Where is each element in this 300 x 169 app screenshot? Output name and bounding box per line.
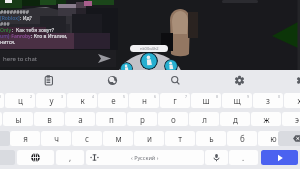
staticText: Fanroby xyxy=(10,33,31,39)
button[interactable]: Clipboard xyxy=(37,70,59,91)
staticText: щ xyxy=(233,95,241,106)
button[interactable]: More xyxy=(290,70,300,91)
staticText: 8 xyxy=(216,94,219,99)
button[interactable]: ь xyxy=(196,131,226,146)
button[interactable]: ц xyxy=(5,93,35,108)
staticText: here to chat xyxy=(0,55,37,63)
button[interactable]: Translate xyxy=(101,70,123,91)
staticText: 1 xyxy=(0,94,2,99)
button[interactable]: н xyxy=(129,93,159,108)
button[interactable]: Emote xyxy=(120,62,133,75)
button[interactable]: с xyxy=(72,131,102,146)
button[interactable]: Space xyxy=(86,150,204,165)
staticText: я xyxy=(23,133,28,144)
button[interactable]: , xyxy=(56,150,84,165)
staticText: и xyxy=(147,133,152,144)
staticText: л xyxy=(202,114,207,125)
staticText: ю xyxy=(270,133,277,144)
button[interactable]: . xyxy=(229,150,258,165)
staticText: . xyxy=(242,152,245,163)
staticText: um] xyxy=(0,33,10,39)
button[interactable]: о xyxy=(158,112,188,126)
staticText: з xyxy=(266,95,270,106)
staticText: нится. xyxy=(0,39,16,45)
button[interactable]: ю xyxy=(258,131,288,146)
button[interactable]: ж xyxy=(251,112,281,126)
button[interactable]: here to chat xyxy=(0,50,116,67)
staticText: 5 xyxy=(123,94,126,99)
staticText: 6 xyxy=(154,94,157,99)
button[interactable]: Emote xyxy=(164,59,178,73)
staticText: э xyxy=(295,114,299,125)
staticText: 7 xyxy=(185,94,188,99)
staticText: ш xyxy=(202,95,210,106)
button[interactable]: Backspace xyxy=(278,131,300,146)
staticText: nk00o4h2 xyxy=(140,46,159,51)
staticText: 4 xyxy=(92,94,95,99)
staticText: ######### xyxy=(0,9,30,15)
staticText: р xyxy=(140,114,145,125)
staticText: х xyxy=(297,95,300,106)
button[interactable]: ы xyxy=(3,112,33,126)
button[interactable]: з xyxy=(253,93,283,108)
button[interactable]: р xyxy=(127,112,157,126)
button[interactable]: п xyxy=(96,112,126,126)
button[interactable]: я xyxy=(10,131,40,146)
staticText: о xyxy=(171,114,176,125)
staticText: 0 xyxy=(278,94,281,99)
button[interactable]: Send xyxy=(261,150,298,165)
staticText: 2 xyxy=(30,94,33,99)
button[interactable]: Search xyxy=(164,70,186,91)
button[interactable]: б xyxy=(227,131,257,146)
staticText: : Как тебя зовут? xyxy=(12,27,54,33)
staticText: г xyxy=(173,95,177,106)
staticText: ь xyxy=(209,133,214,144)
button[interactable]: у xyxy=(36,93,66,108)
staticText: 3 xyxy=(61,94,64,99)
staticText: в xyxy=(47,114,52,125)
button[interactable]: ч xyxy=(41,131,71,146)
staticText: : Кто в Италии, xyxy=(31,33,68,39)
button[interactable]: а xyxy=(65,112,95,126)
button[interactable]: Emote xyxy=(140,52,158,70)
staticText: ‹ Русский › xyxy=(131,154,159,161)
button[interactable]: щ xyxy=(222,93,252,108)
button[interactable]: Settings xyxy=(228,70,250,91)
button[interactable]: и xyxy=(134,131,164,146)
staticText: 9 xyxy=(247,94,250,99)
button[interactable]: Voice input xyxy=(205,150,228,165)
button[interactable]: й xyxy=(0,93,4,108)
staticText: п xyxy=(109,114,114,125)
button[interactable]: т xyxy=(165,131,195,146)
button[interactable]: л xyxy=(189,112,219,126)
staticText: [Roblox] xyxy=(0,15,20,21)
button[interactable]: х xyxy=(284,93,300,108)
button[interactable]: к xyxy=(67,93,97,108)
staticText: с xyxy=(85,133,89,144)
staticText: д xyxy=(233,114,238,125)
button[interactable]: м xyxy=(103,131,133,146)
button[interactable]: е xyxy=(98,93,128,108)
staticText: е xyxy=(111,95,116,106)
staticText: к xyxy=(80,95,85,106)
button[interactable]: Change language xyxy=(17,150,54,165)
staticText: у xyxy=(49,95,54,106)
button[interactable]: д xyxy=(220,112,250,126)
staticText: а xyxy=(78,114,83,125)
button[interactable]: э xyxy=(282,112,300,126)
staticText: ч xyxy=(54,133,59,144)
staticText: б xyxy=(240,133,245,144)
staticText: Only xyxy=(0,27,12,33)
button[interactable]: ш xyxy=(191,93,221,108)
button[interactable]: г xyxy=(160,93,190,108)
staticText: ### xyxy=(0,21,10,27)
button[interactable]: ф xyxy=(0,112,2,126)
button[interactable]: в xyxy=(34,112,64,126)
staticText: н xyxy=(142,95,147,106)
staticText: т xyxy=(178,133,182,144)
staticText: , xyxy=(69,152,72,163)
staticText: ы xyxy=(15,114,22,125)
staticText: ж xyxy=(263,114,270,125)
